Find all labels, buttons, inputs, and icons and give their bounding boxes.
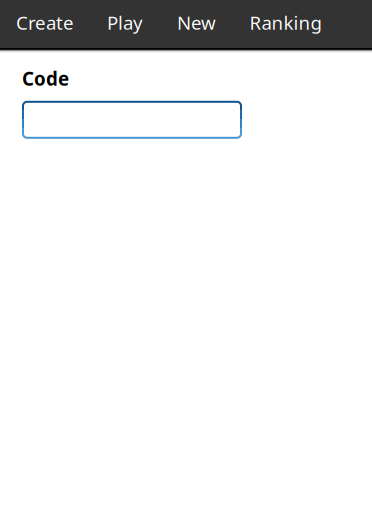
button[interactable]: Create [0,0,90,48]
staticText: Ranking [249,10,321,35]
staticText: Play [107,10,143,35]
staticText: Code [22,66,69,91]
button[interactable]: Ranking [233,0,338,48]
button[interactable]: Code [22,101,242,139]
button[interactable]: Play [90,0,160,48]
button[interactable]: New [160,0,233,48]
staticText: Create [16,10,74,35]
staticText: New [177,10,216,35]
